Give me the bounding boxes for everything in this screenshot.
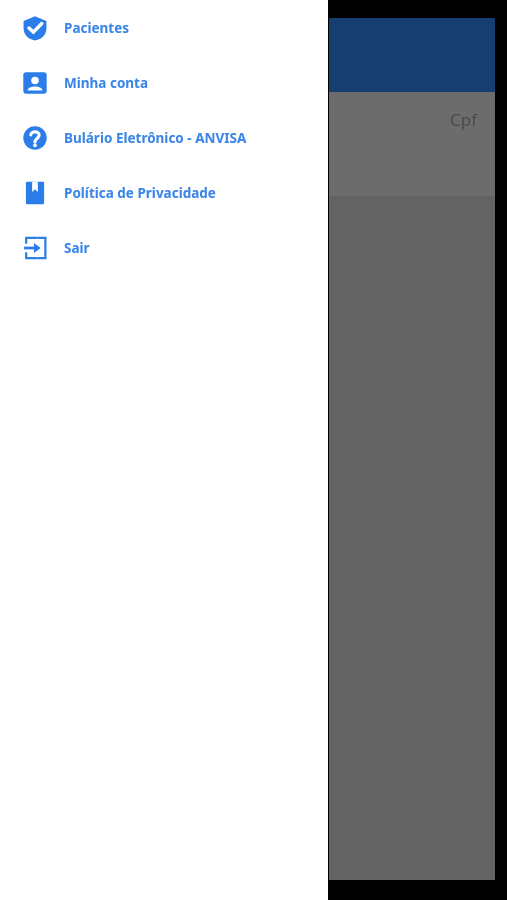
other: Minha conta <box>22 70 48 96</box>
button[interactable]: Bulário Eletrônico - ANVISA <box>0 110 328 165</box>
staticText: Bulário Eletrônico - ANVISA <box>64 129 247 147</box>
button[interactable]: Minha conta <box>0 55 328 110</box>
button[interactable]: Sair <box>0 220 328 275</box>
other: Sair <box>22 235 48 261</box>
staticText: Cpf <box>450 108 478 131</box>
button[interactable]: Pacientes <box>0 0 328 55</box>
staticText: Sair <box>64 239 90 257</box>
button[interactable]: Política de Privacidade <box>0 165 328 220</box>
other: Bulário Eletrônico - ANVISA <box>22 125 48 151</box>
other: Pacientes <box>22 15 48 41</box>
staticText: Pacientes <box>64 19 130 37</box>
staticText: Minha conta <box>64 74 149 92</box>
staticText: Política de Privacidade <box>64 184 216 202</box>
other: Política de Privacidade <box>22 180 48 206</box>
